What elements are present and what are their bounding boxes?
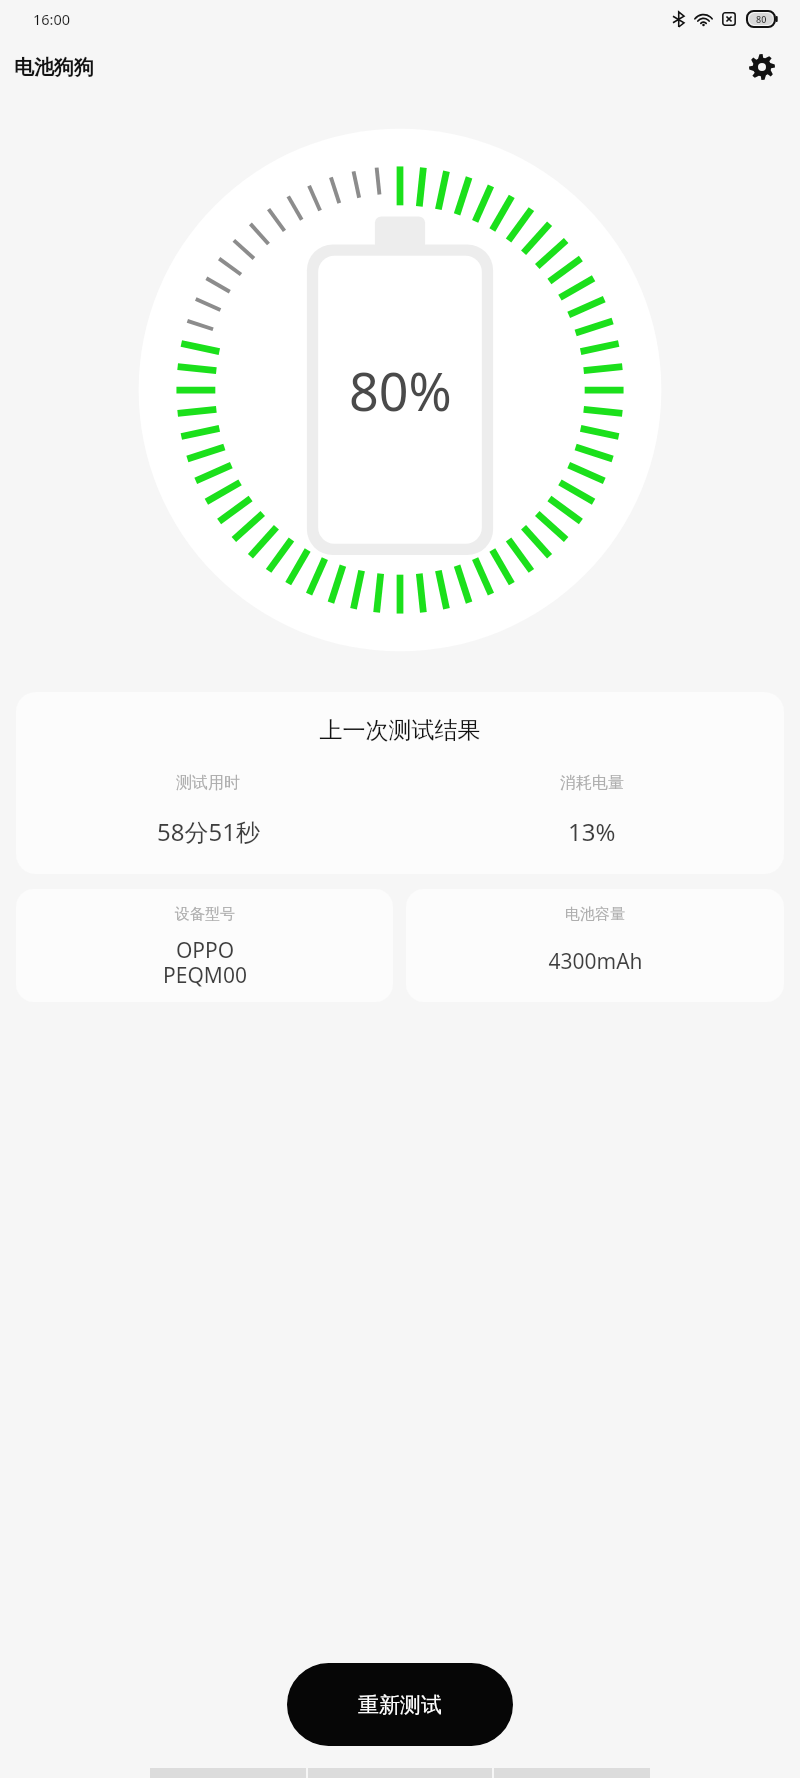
staticText: 上一次测试结果 (16, 716, 784, 745)
staticText: 4300mAh (548, 947, 643, 976)
staticText: 80% (349, 355, 452, 426)
staticText: 设备型号 (175, 905, 235, 924)
staticText: 测试用时 (176, 773, 240, 793)
staticText: 重新测试 (358, 1692, 442, 1718)
button[interactable]: 上一次测试结果 (16, 692, 784, 874)
staticText: 80 (756, 13, 767, 25)
button[interactable]: 电池容量 (406, 889, 784, 1002)
staticText: 消耗电量 (560, 773, 624, 793)
staticText: 电池容量 (565, 905, 625, 924)
staticText: 电池狗狗 (14, 55, 94, 80)
staticText: 13% (568, 815, 616, 848)
button[interactable]: 重新测试 (287, 1663, 513, 1746)
staticText: OPPO PEQM00 (163, 936, 247, 989)
staticText: 16:00 (33, 9, 71, 29)
button[interactable]: Settings (740, 45, 784, 89)
button[interactable]: 设备型号 (16, 889, 393, 1002)
staticText: 58分51秒 (157, 815, 260, 848)
